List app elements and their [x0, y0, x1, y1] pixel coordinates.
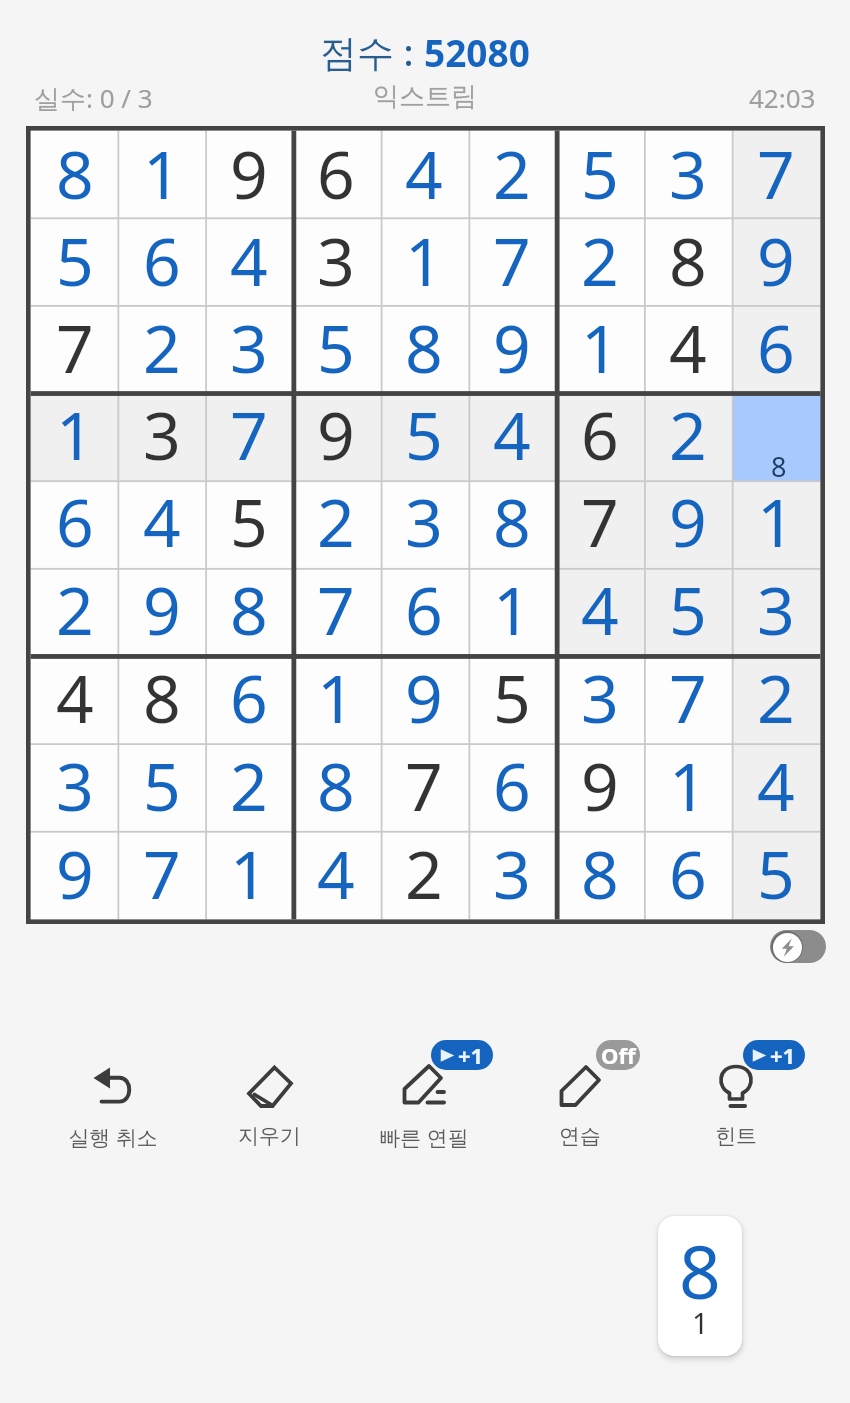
staticText: 7: [757, 128, 795, 215]
button[interactable]: Cell row ${r + 1} column ${c + 1} value …: [118, 743, 205, 831]
button[interactable]: Cell row ${r + 1} column ${c + 1} value …: [468, 655, 556, 743]
button[interactable]: Cell row ${r + 1} column ${c + 1} value …: [644, 218, 732, 305]
button[interactable]: Cell row ${r + 1} column ${c + 1} value …: [380, 567, 468, 655]
button[interactable]: Cell row ${r + 1} column ${c + 1} value …: [732, 131, 820, 218]
button[interactable]: Cell row ${r + 1} column ${c + 1} value …: [468, 479, 556, 567]
button[interactable]: Cell row ${r + 1} column ${c + 1} value …: [31, 392, 118, 479]
staticText: 6: [405, 564, 443, 652]
button[interactable]: Cell row ${r + 1} column ${c + 1} value …: [205, 131, 292, 218]
button[interactable]: Cell row ${r + 1} column ${c + 1} value …: [205, 831, 292, 919]
button[interactable]: Cell row ${r + 1} column ${c + 1} value …: [292, 743, 380, 831]
button[interactable]: Cell row ${r + 1} column ${c + 1} value …: [292, 131, 380, 218]
button[interactable]: Cell row ${r + 1} column ${c + 1} value …: [732, 743, 820, 831]
button[interactable]: Cell row ${r + 1} column ${c + 1} value …: [732, 305, 820, 392]
button[interactable]: Cell row ${r + 1} column ${c + 1} value …: [644, 131, 732, 218]
button[interactable]: Cell row ${r + 1} column ${c + 1} value …: [732, 218, 820, 305]
staticText: 6: [669, 828, 707, 916]
button[interactable]: Cell row ${r + 1} column ${c + 1} value …: [292, 218, 380, 305]
button[interactable]: Practice notes: [503, 1052, 657, 1158]
button[interactable]: Cell row ${r + 1} column ${c + 1} value …: [556, 567, 644, 655]
button[interactable]: Cell row ${r + 1} column ${c + 1} value …: [31, 743, 118, 831]
button[interactable]: Cell row ${r + 1} column ${c + 1} value …: [205, 392, 292, 479]
button[interactable]: Cell row ${r + 1} column ${c + 1} value …: [644, 655, 732, 743]
button[interactable]: Cell row ${r + 1} column ${c + 1} value …: [292, 305, 380, 392]
button[interactable]: Cell row ${r + 1} column ${c + 1} value …: [205, 567, 292, 655]
button[interactable]: Cell row ${r + 1} column ${c + 1} value …: [468, 743, 556, 831]
button[interactable]: Cell row ${r + 1} column ${c + 1} value …: [732, 831, 820, 919]
staticText: 9: [581, 740, 619, 828]
button[interactable]: Cell row ${r + 1} column ${c + 1} value …: [644, 305, 732, 392]
button[interactable]: Cell row ${r + 1} column ${c + 1} value …: [118, 131, 205, 218]
button[interactable]: Cell row ${r + 1} column ${c + 1} value …: [31, 479, 118, 567]
button[interactable]: Cell row ${r + 1} column ${c + 1} value …: [118, 392, 205, 479]
button[interactable]: Cell row ${r + 1} column ${c + 1} value …: [205, 305, 292, 392]
button[interactable]: Cell row ${r + 1} column ${c + 1} value …: [380, 131, 468, 218]
button[interactable]: Cell row ${r + 1} column ${c + 1} value …: [118, 479, 205, 567]
button[interactable]: Cell row ${r + 1} column ${c + 1} value …: [468, 831, 556, 919]
button[interactable]: Cell row ${r + 1} column ${c + 1} value …: [556, 305, 644, 392]
button[interactable]: Cell row ${r + 1} column ${c + 1} value …: [31, 567, 118, 655]
button[interactable]: Cell row ${r + 1} column ${c + 1} value …: [292, 655, 380, 743]
button[interactable]: Cell row ${r + 1} column ${c + 1} value …: [732, 655, 820, 743]
button[interactable]: Cell row ${r + 1} column ${c + 1} value …: [292, 567, 380, 655]
button[interactable]: Cell row ${r + 1} column ${c + 1} value …: [380, 392, 468, 479]
button[interactable]: Cell row ${r + 1} column ${c + 1} value …: [556, 655, 644, 743]
button[interactable]: Cell row ${r + 1} column ${c + 1} value …: [118, 305, 205, 392]
button[interactable]: Cell row ${r + 1} column ${c + 1} value …: [644, 392, 732, 479]
button[interactable]: Cell row ${r + 1} column ${c + 1} value …: [644, 479, 732, 567]
button[interactable]: Undo: [36, 1052, 190, 1158]
button[interactable]: Cell row ${r + 1} column ${c + 1} value …: [205, 479, 292, 567]
button[interactable]: Cell row ${r + 1} column ${c + 1} value …: [644, 567, 732, 655]
button[interactable]: Cell row ${r + 1} column ${c + 1} value …: [468, 567, 556, 655]
button[interactable]: Lightning auto-fill toggle: [770, 930, 826, 963]
button[interactable]: Select number 8, 1 remaining: [658, 1216, 742, 1356]
button[interactable]: Cell row ${r + 1} column ${c + 1} value …: [205, 655, 292, 743]
button[interactable]: Hint: [659, 1052, 813, 1158]
button[interactable]: Cell row ${r + 1} column ${c + 1} value …: [468, 131, 556, 218]
staticText: 2: [493, 128, 531, 215]
button[interactable]: Cell row ${r + 1} column ${c + 1} value …: [468, 218, 556, 305]
button[interactable]: Cell row ${r + 1} column ${c + 1} value …: [644, 831, 732, 919]
button[interactable]: Cell row ${r + 1} column ${c + 1} value …: [31, 131, 118, 218]
button[interactable]: Cell row ${r + 1} column ${c + 1} value …: [292, 479, 380, 567]
button[interactable]: Cell row ${r + 1} column ${c + 1} value …: [556, 392, 644, 479]
button[interactable]: Cell row ${r + 1} column ${c + 1} value …: [118, 567, 205, 655]
button[interactable]: Cell row ${r + 1} column ${c + 1} value …: [205, 743, 292, 831]
button[interactable]: Cell row ${r + 1} column ${c + 1} value …: [118, 218, 205, 305]
button[interactable]: Cell row ${r + 1} column ${c + 1} value …: [31, 831, 118, 919]
button[interactable]: Cell row ${r + 1} column ${c + 1} value …: [556, 131, 644, 218]
button[interactable]: Cell row ${r + 1} column ${c + 1} value …: [380, 831, 468, 919]
staticText: 8: [405, 302, 443, 389]
button[interactable]: Cell row ${r + 1} column ${c + 1} value …: [31, 655, 118, 743]
button[interactable]: Empty cell row ${r + 1} column ${c + 1}: [732, 392, 820, 479]
button[interactable]: Cell row ${r + 1} column ${c + 1} value …: [380, 743, 468, 831]
button[interactable]: Cell row ${r + 1} column ${c + 1} value …: [380, 479, 468, 567]
button[interactable]: Cell row ${r + 1} column ${c + 1} value …: [556, 218, 644, 305]
button[interactable]: Cell row ${r + 1} column ${c + 1} value …: [468, 305, 556, 392]
button[interactable]: Cell row ${r + 1} column ${c + 1} value …: [380, 305, 468, 392]
button[interactable]: Cell row ${r + 1} column ${c + 1} value …: [380, 655, 468, 743]
button[interactable]: Quick pencil: [347, 1052, 501, 1158]
button[interactable]: Cell row ${r + 1} column ${c + 1} value …: [556, 743, 644, 831]
staticText: 7: [493, 215, 531, 302]
button[interactable]: Cell row ${r + 1} column ${c + 1} value …: [732, 567, 820, 655]
button[interactable]: Erase: [192, 1052, 346, 1158]
button[interactable]: Cell row ${r + 1} column ${c + 1} value …: [292, 392, 380, 479]
staticText: 5: [581, 128, 619, 215]
staticText: 9: [143, 564, 181, 652]
staticText: 1: [56, 389, 94, 476]
staticText: 3: [493, 828, 531, 916]
button[interactable]: Cell row ${r + 1} column ${c + 1} value …: [118, 655, 205, 743]
button[interactable]: Cell row ${r + 1} column ${c + 1} value …: [556, 831, 644, 919]
button[interactable]: Cell row ${r + 1} column ${c + 1} value …: [732, 479, 820, 567]
staticText: 실수: 0 / 3: [34, 80, 153, 116]
button[interactable]: Cell row ${r + 1} column ${c + 1} value …: [31, 218, 118, 305]
button[interactable]: Cell row ${r + 1} column ${c + 1} value …: [31, 305, 118, 392]
button[interactable]: Cell row ${r + 1} column ${c + 1} value …: [118, 831, 205, 919]
button[interactable]: Cell row ${r + 1} column ${c + 1} value …: [556, 479, 644, 567]
button[interactable]: Cell row ${r + 1} column ${c + 1} value …: [468, 392, 556, 479]
button[interactable]: Cell row ${r + 1} column ${c + 1} value …: [380, 218, 468, 305]
button[interactable]: Cell row ${r + 1} column ${c + 1} value …: [205, 218, 292, 305]
button[interactable]: Cell row ${r + 1} column ${c + 1} value …: [644, 743, 732, 831]
button[interactable]: Cell row ${r + 1} column ${c + 1} value …: [292, 831, 380, 919]
